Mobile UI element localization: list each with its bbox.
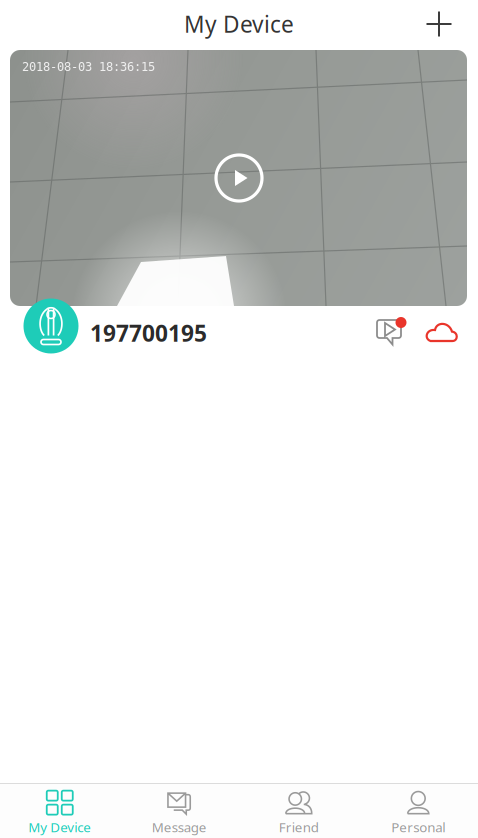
button[interactable]: Friend — [239, 781, 358, 838]
staticText: Friend — [279, 818, 319, 836]
staticText: 2018-08-03 18:36:15 — [22, 60, 155, 74]
button[interactable]: Personal — [358, 781, 478, 838]
staticText: Message — [152, 818, 207, 836]
button[interactable]: Cloud storage — [421, 312, 463, 354]
staticText: My Device — [184, 9, 294, 39]
staticText: 197700195 — [90, 318, 207, 348]
button[interactable]: Play live view — [209, 148, 269, 208]
button[interactable]: Playback messages — [369, 311, 411, 353]
button[interactable]: Add device — [413, 2, 465, 46]
staticText: Personal — [391, 818, 445, 836]
button[interactable]: My Device — [0, 781, 119, 838]
staticText: My Device — [28, 818, 91, 836]
button[interactable]: Message — [119, 781, 239, 838]
